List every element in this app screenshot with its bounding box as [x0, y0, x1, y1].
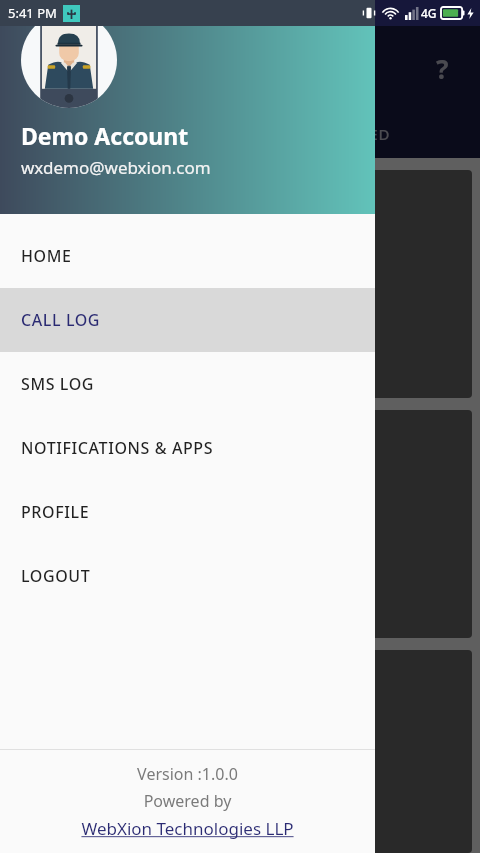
- button[interactable]: [8, 410, 472, 638]
- staticText: WebXion Technologies LLP: [81, 817, 294, 840]
- button[interactable]: Profile picture: [21, 12, 117, 108]
- staticText: PROFILE: [21, 501, 90, 523]
- button[interactable]: CALL LOG: [0, 288, 375, 352]
- button[interactable]: PROFILE: [0, 480, 375, 544]
- staticText: HOME: [21, 245, 72, 267]
- staticText: 4G: [421, 5, 437, 21]
- button[interactable]: [8, 170, 472, 398]
- staticText: LOGOUT: [21, 565, 91, 587]
- button[interactable]: NOTIFICATIONS & APPS: [0, 416, 375, 480]
- staticText: SMS LOG: [21, 373, 95, 395]
- staticText: MISSED: [330, 124, 391, 144]
- button[interactable]: [8, 650, 472, 853]
- button[interactable]: SMS LOG: [0, 352, 375, 416]
- staticText: CALL LOG: [21, 309, 101, 331]
- button[interactable]: LOGOUT: [0, 544, 375, 608]
- staticText: ?: [436, 51, 449, 86]
- staticText: 5:41 PM: [8, 4, 57, 22]
- button[interactable]: Help: [422, 48, 462, 88]
- button[interactable]: WebXion Technologies LLP: [0, 817, 375, 840]
- staticText: Version :1.0.0: [0, 763, 375, 785]
- button[interactable]: MISSED: [240, 110, 480, 158]
- staticText: wxdemo@webxion.com: [21, 156, 211, 179]
- staticText: Demo Account: [21, 120, 189, 151]
- staticText: NOTIFICATIONS & APPS: [21, 437, 214, 459]
- staticText: Powered by: [0, 790, 375, 812]
- button[interactable]: HOME: [0, 224, 375, 288]
